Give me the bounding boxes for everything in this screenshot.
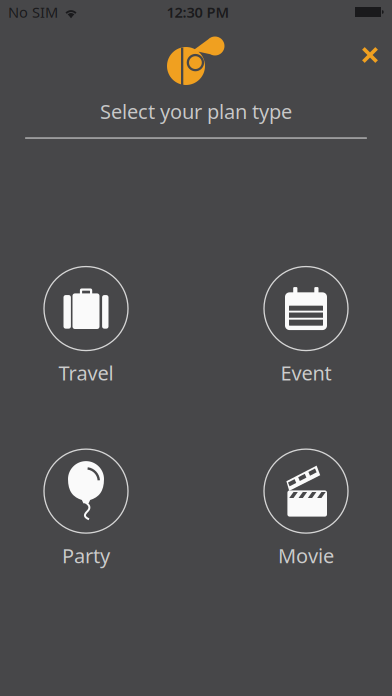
button[interactable]: Movie — [251, 449, 361, 569]
staticText: No SIM — [8, 2, 58, 22]
staticText: Travel — [58, 360, 113, 386]
button[interactable]: Close — [351, 36, 389, 74]
button[interactable]: Party — [31, 449, 141, 569]
staticText: Event — [280, 360, 331, 386]
button[interactable]: Event — [251, 267, 361, 386]
staticText: Party — [62, 542, 110, 569]
staticText: 12:30 PM — [166, 2, 229, 22]
button[interactable]: Travel — [31, 267, 141, 386]
staticText: Select your plan type — [100, 98, 292, 125]
staticText: Movie — [278, 542, 334, 569]
